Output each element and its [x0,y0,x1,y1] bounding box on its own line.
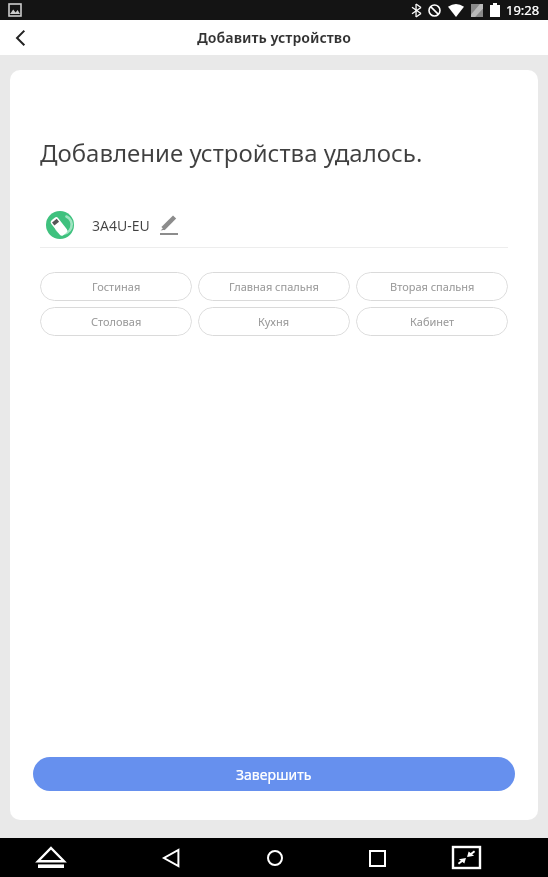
staticText: Добавить устройство [197,28,351,47]
button[interactable]: Кабинет [356,307,508,336]
staticText: Гостиная [92,279,141,294]
staticText: 3A4U-EU [92,216,150,235]
button[interactable] [164,850,180,866]
button[interactable]: Гостиная [40,272,192,301]
staticText: 19:28 [506,1,540,19]
button[interactable]: Столовая [40,307,192,336]
button[interactable] [267,850,283,866]
button[interactable]: Завершить [33,757,515,791]
button[interactable]: Главная спальня [198,272,350,301]
button[interactable] [38,848,64,868]
button[interactable] [159,215,179,235]
button[interactable]: Вторая спальня [356,272,508,301]
button[interactable] [453,847,480,868]
staticText: Столовая [91,314,142,329]
staticText: Добавление устройства удалось. [40,136,423,169]
button[interactable]: Кухня [198,307,350,336]
staticText: Главная спальня [229,279,319,294]
staticText: Завершить [236,765,312,784]
staticText: Вторая спальня [390,279,475,294]
button[interactable] [10,27,32,49]
staticText: Кухня [258,314,290,329]
button[interactable]: 3A4U-EU [40,211,508,239]
staticText: Кабинет [410,314,455,329]
button[interactable] [370,851,385,866]
